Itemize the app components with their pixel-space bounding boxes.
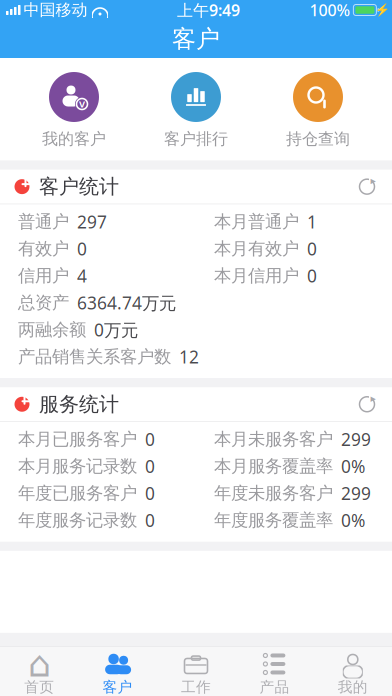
staticText: 客户	[103, 678, 133, 696]
staticText: 年度已服务客户	[18, 483, 137, 504]
staticText: 首页	[24, 678, 54, 696]
staticText: 服务统计	[39, 392, 119, 417]
button[interactable]: 刷新	[350, 172, 384, 202]
staticText: ▸	[370, 175, 375, 187]
staticText: ⚡	[375, 3, 390, 17]
staticText: 产品	[259, 678, 289, 696]
staticText: 4	[77, 264, 87, 287]
staticText: ▸	[370, 392, 375, 404]
button[interactable]: 我的	[314, 647, 392, 696]
staticText: 本月服务覆盖率	[214, 456, 333, 477]
staticText: 我的	[338, 678, 368, 696]
button[interactable]: ⌂	[0, 647, 78, 696]
staticText: 年度服务覆盖率	[214, 510, 333, 531]
staticText: V	[79, 98, 85, 110]
staticText: 0	[307, 264, 317, 287]
staticText: 普通户	[18, 211, 69, 232]
staticText: 客户	[172, 24, 220, 54]
staticText: 客户排行	[164, 129, 228, 149]
button[interactable]: 刷新	[350, 389, 384, 419]
staticText: 两融余额	[18, 319, 86, 340]
staticText: 0%	[341, 509, 365, 532]
staticText: 0	[145, 455, 155, 478]
staticText: 年度服务记录数	[18, 510, 137, 531]
staticText: 中国移动	[23, 0, 87, 20]
staticText: 0%	[341, 455, 365, 478]
staticText: 299	[341, 482, 371, 505]
staticText: 持仓查询	[286, 129, 350, 149]
staticText: 本月信用户	[214, 265, 299, 286]
staticText: 年度未服务客户	[214, 483, 333, 504]
staticText: 100%	[309, 0, 350, 21]
staticText: 产品销售关系客户数	[18, 346, 171, 367]
staticText: 客户统计	[39, 174, 119, 199]
staticText: 0	[77, 237, 87, 260]
staticText: 信用户	[18, 265, 69, 286]
staticText: 有效户	[18, 238, 69, 259]
staticText: 我的客户	[42, 129, 106, 149]
staticText: 0	[145, 482, 155, 505]
staticText: ⌂	[28, 644, 51, 684]
button[interactable]: 工作	[157, 647, 235, 696]
staticText: 本月未服务客户	[214, 429, 333, 450]
button[interactable]: 客户	[78, 647, 157, 696]
staticText: 6364.74万元	[77, 291, 176, 314]
staticText: 1	[307, 210, 317, 233]
staticText: 本月有效户	[214, 238, 299, 259]
staticText: 本月已服务客户	[18, 429, 137, 450]
staticText: 0	[145, 428, 155, 451]
button[interactable]: V	[26, 72, 122, 149]
staticText: 0	[307, 237, 317, 260]
staticText: 12	[179, 345, 199, 368]
staticText: 上午9:49	[177, 0, 240, 21]
staticText: 总资产	[18, 292, 69, 313]
staticText: 本月普通户	[214, 211, 299, 232]
staticText: 0	[145, 509, 155, 532]
staticText: 0万元	[94, 318, 138, 341]
button[interactable]: 持仓查询	[270, 72, 366, 149]
button[interactable]: 产品	[235, 647, 314, 696]
staticText: 297	[77, 210, 107, 233]
staticText: 本月服务记录数	[18, 456, 137, 477]
staticText: 工作	[181, 678, 211, 696]
button[interactable]: 客户排行	[148, 72, 244, 149]
staticText: 299	[341, 428, 371, 451]
